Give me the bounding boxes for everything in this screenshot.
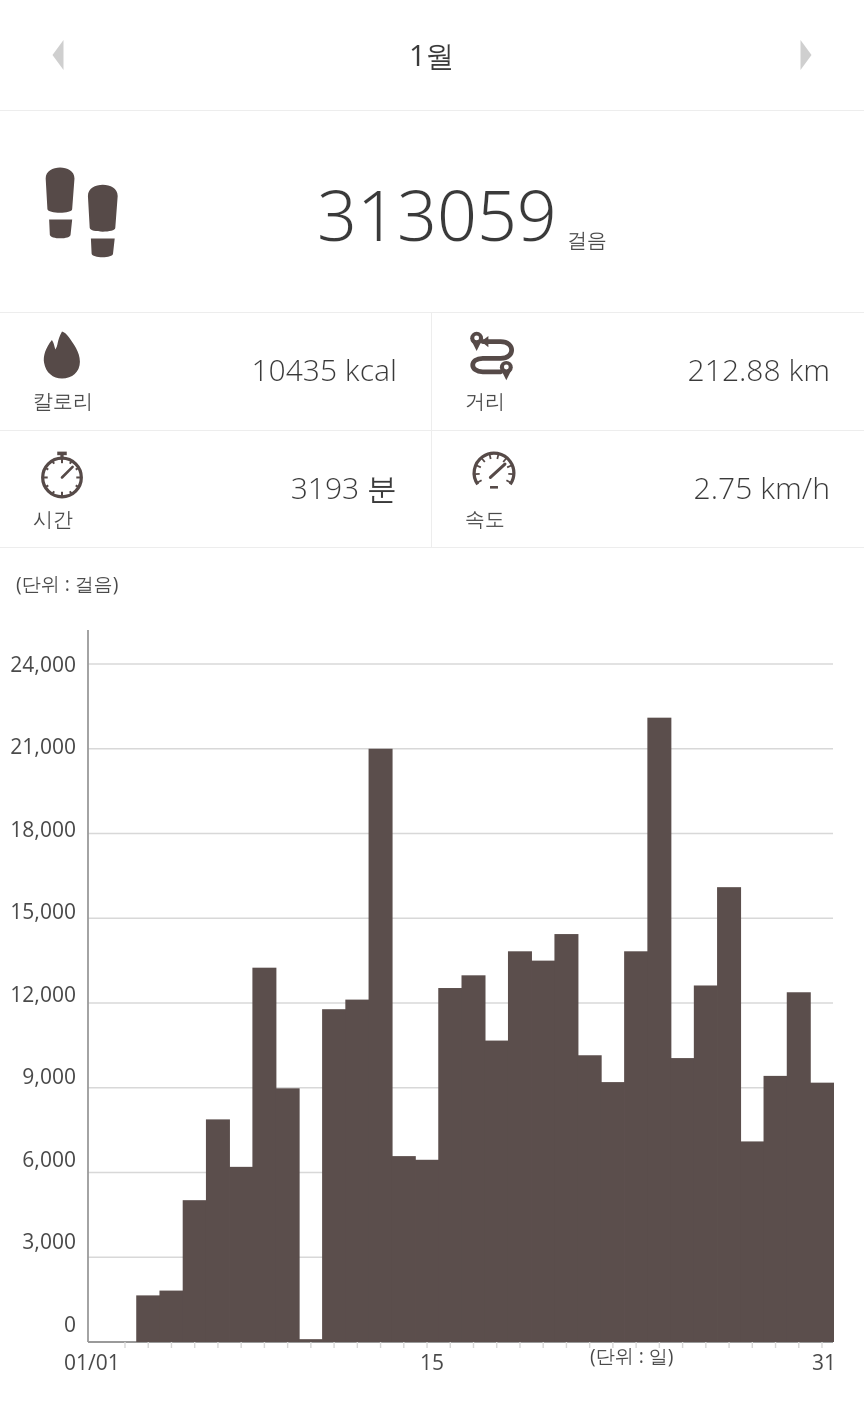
staticText: 313059 <box>317 166 557 261</box>
staticText: 15 <box>420 1348 445 1377</box>
staticText: 2.75 km/h <box>693 467 830 508</box>
staticText: 걸음 <box>567 228 607 253</box>
button[interactable]: Next month <box>770 19 842 91</box>
staticText: (단위 : 걸음) <box>16 571 119 597</box>
staticText: 01/01 <box>64 1348 120 1377</box>
staticText: 3,000 <box>22 1227 76 1256</box>
staticText: 거리 <box>465 389 505 414</box>
staticText: 10435 kcal <box>251 349 397 390</box>
button[interactable]: Previous month <box>22 19 94 91</box>
staticText: 212.88 km <box>687 349 830 390</box>
staticText: 3193 분 <box>290 467 397 508</box>
staticText: 칼로리 <box>33 389 93 414</box>
staticText: 0 <box>63 1310 76 1339</box>
staticText: 시간 <box>33 507 73 532</box>
staticText: 15,000 <box>10 897 76 926</box>
staticText: (단위 : 일) <box>590 1343 674 1369</box>
button[interactable]: 속도 <box>432 431 864 547</box>
staticText: 31 <box>812 1348 837 1377</box>
staticText: 6,000 <box>22 1145 76 1174</box>
staticText: 24,000 <box>10 650 76 679</box>
staticText: 12,000 <box>10 980 76 1009</box>
staticText: 18,000 <box>10 815 76 844</box>
button[interactable]: 칼로리 <box>0 313 431 430</box>
staticText: 1월 <box>409 35 455 75</box>
staticText: 9,000 <box>22 1062 76 1091</box>
staticText: 21,000 <box>10 732 76 761</box>
button[interactable]: 거리 <box>432 313 864 430</box>
button[interactable]: 시간 <box>0 431 431 547</box>
button[interactable]: 313059 <box>0 111 864 312</box>
staticText: 속도 <box>465 507 505 532</box>
